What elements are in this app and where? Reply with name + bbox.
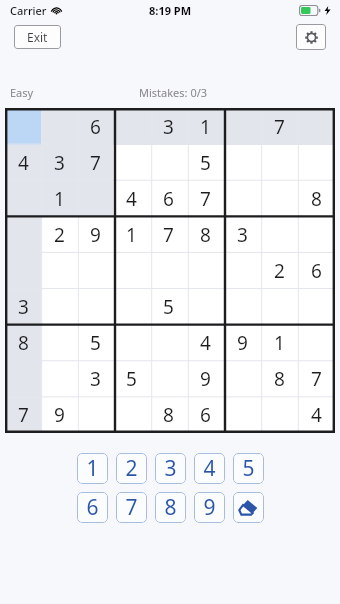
- button[interactable]: [41, 361, 77, 397]
- button[interactable]: 9: [187, 361, 224, 397]
- button[interactable]: [113, 289, 150, 325]
- button[interactable]: 8: [155, 492, 186, 523]
- button[interactable]: Settings: [296, 24, 326, 50]
- button[interactable]: [261, 217, 298, 253]
- button[interactable]: 1: [187, 108, 224, 145]
- button[interactable]: 5: [233, 453, 264, 484]
- button[interactable]: 4: [113, 181, 150, 217]
- button[interactable]: 6: [150, 181, 187, 217]
- button[interactable]: [298, 325, 335, 361]
- button[interactable]: [5, 181, 41, 217]
- staticText: 5: [163, 294, 174, 320]
- button[interactable]: [150, 325, 187, 361]
- button[interactable]: 2: [261, 253, 298, 289]
- button[interactable]: [5, 361, 41, 397]
- staticText: 3: [164, 454, 177, 483]
- button[interactable]: [113, 108, 150, 145]
- button[interactable]: 8: [187, 217, 224, 253]
- button[interactable]: 8: [150, 397, 187, 433]
- button[interactable]: 7: [5, 397, 41, 433]
- button[interactable]: [224, 181, 261, 217]
- button[interactable]: 4: [5, 145, 41, 181]
- button[interactable]: 8: [261, 361, 298, 397]
- button[interactable]: [261, 397, 298, 433]
- button[interactable]: 5: [187, 145, 224, 181]
- button[interactable]: 2: [41, 217, 77, 253]
- button[interactable]: [298, 108, 335, 145]
- button[interactable]: 7: [261, 108, 298, 145]
- button[interactable]: 6: [187, 397, 224, 433]
- button[interactable]: [187, 253, 224, 289]
- button[interactable]: 3: [224, 217, 261, 253]
- button[interactable]: [224, 253, 261, 289]
- button[interactable]: 4: [194, 453, 225, 484]
- button[interactable]: 5: [113, 361, 150, 397]
- button[interactable]: 6: [77, 492, 108, 523]
- staticText: 1: [274, 330, 285, 356]
- button[interactable]: [224, 289, 261, 325]
- staticText: 5: [200, 150, 211, 176]
- button[interactable]: [150, 145, 187, 181]
- button[interactable]: 7: [116, 492, 147, 523]
- button[interactable]: [41, 253, 77, 289]
- button[interactable]: 7: [187, 181, 224, 217]
- button[interactable]: 9: [77, 217, 113, 253]
- button[interactable]: 3: [77, 361, 113, 397]
- button[interactable]: [187, 289, 224, 325]
- button[interactable]: 2: [116, 453, 147, 484]
- button[interactable]: [5, 108, 41, 145]
- button[interactable]: 5: [77, 325, 113, 361]
- button[interactable]: [261, 145, 298, 181]
- button[interactable]: [298, 217, 335, 253]
- button[interactable]: 7: [77, 145, 113, 181]
- button[interactable]: [5, 217, 41, 253]
- button[interactable]: 1: [77, 453, 108, 484]
- button[interactable]: [77, 397, 113, 433]
- button[interactable]: 7: [150, 217, 187, 253]
- button[interactable]: 8: [298, 181, 335, 217]
- button[interactable]: 4: [298, 397, 335, 433]
- button[interactable]: Erase: [233, 492, 264, 523]
- button[interactable]: [41, 289, 77, 325]
- button[interactable]: [298, 289, 335, 325]
- button[interactable]: 3: [41, 145, 77, 181]
- button[interactable]: [113, 253, 150, 289]
- button[interactable]: [224, 108, 261, 145]
- button[interactable]: 1: [41, 181, 77, 217]
- button[interactable]: [41, 325, 77, 361]
- button[interactable]: [224, 397, 261, 433]
- button[interactable]: [113, 145, 150, 181]
- button[interactable]: 1: [261, 325, 298, 361]
- button[interactable]: [5, 253, 41, 289]
- button[interactable]: 9: [224, 325, 261, 361]
- button[interactable]: [150, 361, 187, 397]
- button[interactable]: [298, 145, 335, 181]
- button[interactable]: 4: [187, 325, 224, 361]
- button[interactable]: [261, 289, 298, 325]
- button[interactable]: [113, 325, 150, 361]
- staticText: 3: [18, 294, 29, 320]
- button[interactable]: [224, 361, 261, 397]
- button[interactable]: 6: [298, 253, 335, 289]
- staticText: 4: [200, 330, 211, 356]
- button[interactable]: 9: [194, 492, 225, 523]
- button[interactable]: [113, 397, 150, 433]
- button[interactable]: [150, 253, 187, 289]
- button[interactable]: [224, 145, 261, 181]
- button[interactable]: 6: [77, 108, 113, 145]
- button[interactable]: 7: [298, 361, 335, 397]
- button[interactable]: 8: [5, 325, 41, 361]
- button[interactable]: [261, 181, 298, 217]
- staticText: 5: [242, 454, 255, 483]
- button[interactable]: [77, 253, 113, 289]
- button[interactable]: 3: [5, 289, 41, 325]
- button[interactable]: [77, 181, 113, 217]
- button[interactable]: 1: [113, 217, 150, 253]
- button[interactable]: Exit: [14, 25, 61, 49]
- button[interactable]: 3: [150, 108, 187, 145]
- button[interactable]: [77, 289, 113, 325]
- button[interactable]: [41, 108, 77, 145]
- button[interactable]: 3: [155, 453, 186, 484]
- button[interactable]: 5: [150, 289, 187, 325]
- button[interactable]: 9: [41, 397, 77, 433]
